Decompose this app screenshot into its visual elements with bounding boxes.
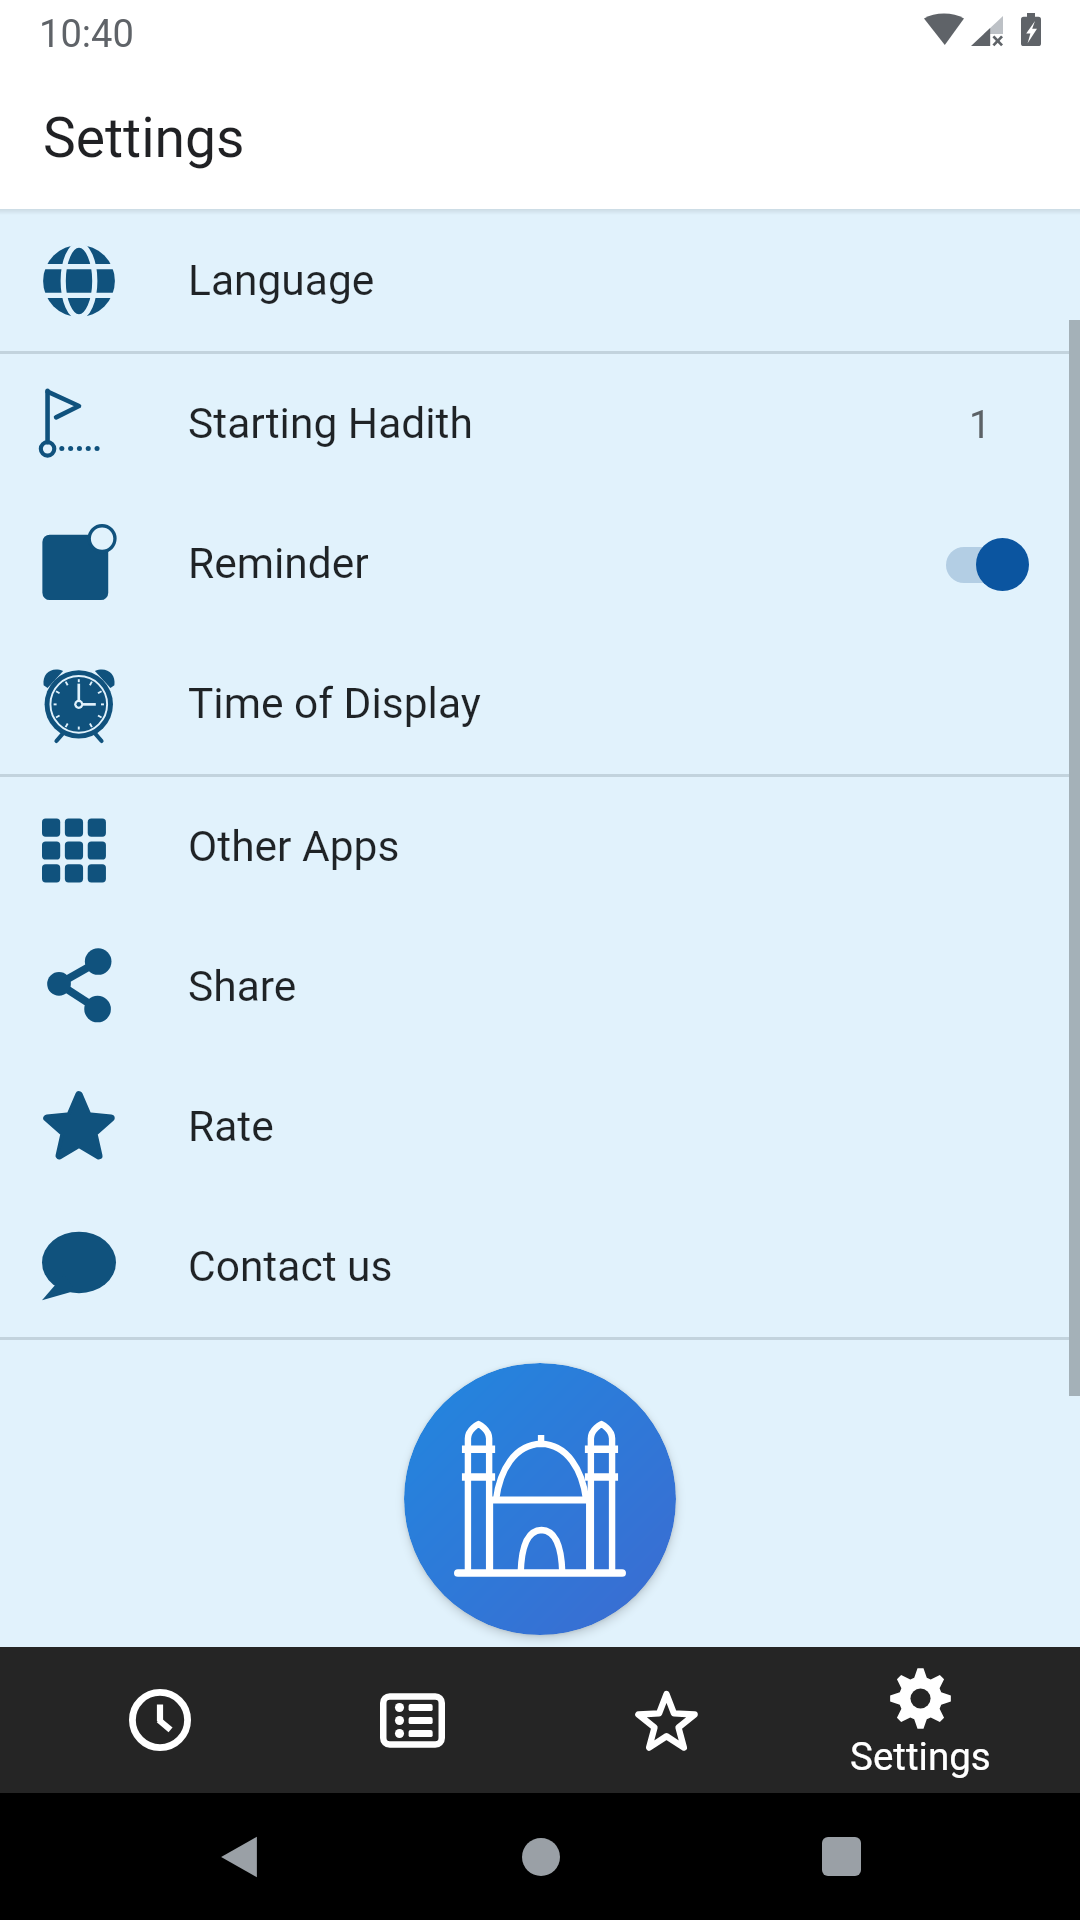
- staticText: Rate: [188, 1102, 274, 1152]
- staticText: Starting Hadith: [188, 399, 473, 449]
- button[interactable]: List: [286, 1647, 539, 1793]
- button[interactable]: Time of Display: [0, 634, 1080, 774]
- staticText: 1: [969, 402, 991, 447]
- staticText: Language: [188, 256, 375, 306]
- button[interactable]: Settings: [793, 1647, 1047, 1793]
- staticText: Contact us: [188, 1242, 393, 1292]
- button[interactable]: Starting Hadith: [0, 354, 1080, 494]
- staticText: Settings: [43, 106, 245, 171]
- button[interactable]: Other Apps: [0, 777, 1080, 917]
- staticText: Other Apps: [188, 822, 400, 872]
- staticText: Share: [188, 962, 297, 1012]
- staticText: Time of Display: [188, 679, 481, 729]
- button[interactable]: Share: [0, 917, 1080, 1057]
- button[interactable]: Language: [0, 211, 1080, 351]
- button[interactable]: Favorites: [539, 1647, 793, 1793]
- button[interactable]: App logo: [404, 1363, 676, 1635]
- staticText: Reminder: [188, 539, 369, 589]
- button[interactable]: Back: [88, 1793, 390, 1920]
- button[interactable]: Reminder: [0, 494, 1080, 634]
- button[interactable]: Contact us: [0, 1197, 1080, 1337]
- staticText: 10:40: [39, 12, 134, 57]
- button[interactable]: Overview: [691, 1793, 992, 1920]
- button[interactable]: Rate: [0, 1057, 1080, 1197]
- button[interactable]: Recent: [33, 1647, 286, 1793]
- staticText: Settings: [850, 1734, 991, 1779]
- button[interactable]: Home: [390, 1793, 691, 1920]
